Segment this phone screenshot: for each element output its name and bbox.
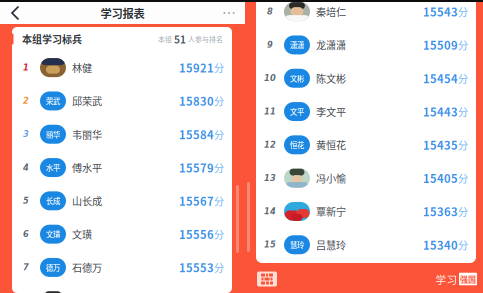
staticText: 15363 [423,203,458,219]
button[interactable]: 5 [12,184,232,217]
staticText: 分 [458,237,468,252]
staticText: 文璜 [46,229,60,239]
staticText: 冯小愉 [316,171,346,185]
staticText: 51 [172,32,188,46]
staticText: 文彬 [290,73,304,84]
staticText: 9 [267,40,273,50]
button[interactable]: 6 [12,217,232,251]
button[interactable]: 返回 [4,2,28,24]
staticText: 15 [264,240,276,249]
staticText: 丽华 [46,129,60,140]
staticText: 分 [458,4,468,19]
staticText: 水平 [46,162,60,173]
button[interactable]: 4 [12,151,232,184]
staticText: 15405 [423,170,458,186]
staticText: 文璜 [72,227,92,241]
staticText: 分 [214,227,224,241]
button[interactable]: 13 [256,161,476,195]
staticText: 6 [23,229,29,239]
staticText: 强国 [460,273,476,285]
staticText: 分 [458,204,468,219]
staticText: 覃新宁 [316,204,346,219]
staticText: 15584 [179,126,214,142]
staticText: 文平 [290,106,304,117]
staticText: 林健 [72,60,92,75]
staticText: 14 [264,207,276,216]
staticText: 分 [214,193,224,208]
staticText: 10 [264,73,276,83]
staticText: 本组学习标兵 [22,32,82,46]
staticText: 分 [458,71,468,86]
staticText: 分 [214,160,224,175]
staticText: 12 [264,140,276,150]
staticText: 分 [458,137,468,152]
staticText: 15435 [423,137,458,153]
staticText: 3 [23,129,29,139]
staticText: 15556 [179,226,214,242]
staticText: 黄恒花 [316,137,346,152]
staticText: 11 [264,107,276,116]
staticText: 分 [214,127,224,142]
staticText: 分 [458,38,468,52]
staticText: 人参与排名 [188,34,223,44]
staticText: 学习 [435,271,457,287]
staticText: 吕慧玲 [316,237,346,252]
staticText: 荣武 [46,95,60,106]
staticText: 15509 [423,37,458,53]
button[interactable]: 15 [256,228,476,261]
staticText: 本组 [158,34,172,44]
staticText: 2 [23,96,29,106]
staticText: 5 [23,196,29,206]
staticText: 傅水平 [72,160,102,175]
button[interactable]: 8 [256,0,476,28]
staticText: 德万 [46,262,60,273]
staticText: 15830 [179,93,214,109]
staticText: 邱荣武 [72,94,102,108]
button[interactable]: 1 [12,51,232,84]
staticText: 长成 [46,195,60,206]
staticText: 分 [214,94,224,108]
staticText: 15579 [179,159,214,176]
staticText: 秦培仁 [316,4,346,19]
button[interactable]: 更多 [217,2,241,24]
staticText: 韦丽华 [72,127,102,142]
staticText: 龙潇潇 [316,38,346,52]
staticText: 15921 [179,59,214,76]
staticText: 石德万 [72,260,102,275]
staticText: 分 [458,104,468,119]
staticText: 陈文彬 [316,71,346,86]
staticText: 潇潇 [290,39,304,50]
button[interactable]: 10 [256,62,476,95]
button[interactable]: 11 [256,95,476,128]
staticText: 李文平 [316,104,346,119]
staticText: 分 [214,60,224,75]
staticText: 分 [458,171,468,185]
button[interactable]: 14 [256,195,476,228]
staticText: 15567 [179,193,214,209]
staticText: 山长成 [72,193,102,208]
button[interactable]: 3 [12,118,232,151]
staticText: 15553 [179,259,214,275]
staticText: 13 [264,173,276,183]
button[interactable]: 2 [12,84,232,118]
staticText: 4 [23,163,29,172]
staticText: 15340 [423,237,458,253]
button[interactable]: 9 [256,28,476,62]
staticText: 7 [23,263,29,272]
staticText: 15443 [423,103,458,120]
staticText: 恒花 [290,139,304,150]
staticText: 分 [214,260,224,275]
staticText: 1 [23,63,29,72]
staticText: 15543 [423,3,458,20]
button[interactable]: 12 [256,128,476,161]
staticText: 慧玲 [290,239,304,250]
staticText: 8 [267,7,273,16]
button[interactable]: 7 [12,251,232,284]
staticText: 15454 [423,70,458,86]
staticText: 学习报表 [100,5,144,21]
